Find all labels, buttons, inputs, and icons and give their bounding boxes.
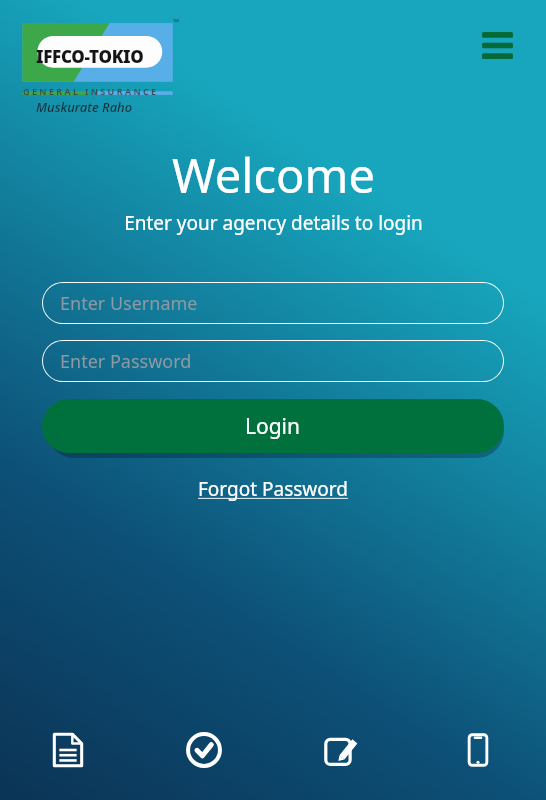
staticText: Login xyxy=(245,412,301,441)
staticText: Welcome xyxy=(172,143,375,207)
button[interactable]: Mobile xyxy=(409,700,546,800)
button[interactable]: Login xyxy=(42,399,504,453)
staticText: Enter Username xyxy=(60,291,198,316)
staticText: Enter Password xyxy=(60,349,192,374)
button[interactable]: Forgot Password xyxy=(190,473,356,505)
staticText: Muskurate Raho xyxy=(36,98,133,116)
button[interactable]: Edit xyxy=(272,700,409,800)
staticText: GENERAL INSURANCE xyxy=(23,85,159,97)
staticText: IFFCO-TOKIO xyxy=(36,45,144,68)
staticText: ™ xyxy=(173,16,180,27)
staticText: Enter your agency details to login xyxy=(124,210,423,236)
staticText: Forgot Password xyxy=(198,476,348,502)
button[interactable]: Enter Password xyxy=(42,340,504,382)
button[interactable]: Documents xyxy=(0,700,136,800)
button[interactable]: Enter Username xyxy=(42,282,504,324)
button[interactable]: Menu xyxy=(470,20,524,70)
button[interactable]: Approved xyxy=(136,700,272,800)
